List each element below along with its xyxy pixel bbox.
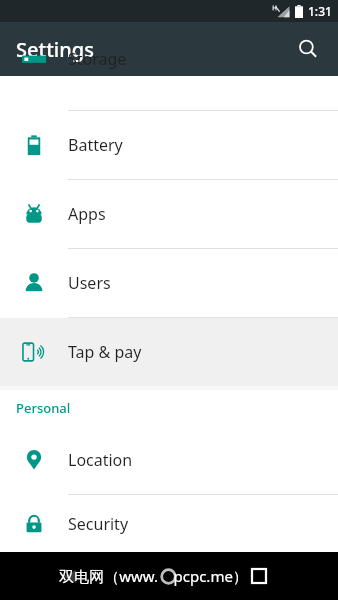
staticText: Personal (16, 399, 71, 417)
button[interactable]: Apps (0, 180, 338, 248)
staticText: Settings (16, 36, 94, 63)
button[interactable]: Back (52, 559, 86, 593)
button[interactable]: Battery (0, 111, 338, 179)
staticText: 1:31 (308, 3, 332, 19)
staticText: Apps (68, 203, 106, 225)
staticText: Security (68, 513, 129, 535)
button[interactable]: Search (286, 27, 330, 71)
staticText: Battery (68, 134, 123, 156)
button[interactable]: Security (0, 495, 338, 552)
button[interactable]: Tap & pay (0, 318, 338, 386)
staticText: 双电网（www. pcpc.me） (59, 566, 248, 586)
button[interactable]: Recent apps (242, 559, 276, 593)
button[interactable]: Home (151, 559, 185, 593)
staticText: Users (68, 272, 111, 294)
staticText: Tap & pay (68, 341, 142, 363)
staticText: Location (68, 449, 133, 471)
staticText: Storage (68, 48, 127, 70)
button[interactable]: Storage (0, 42, 338, 76)
button[interactable]: Location (0, 426, 338, 494)
button[interactable]: Users (0, 249, 338, 317)
